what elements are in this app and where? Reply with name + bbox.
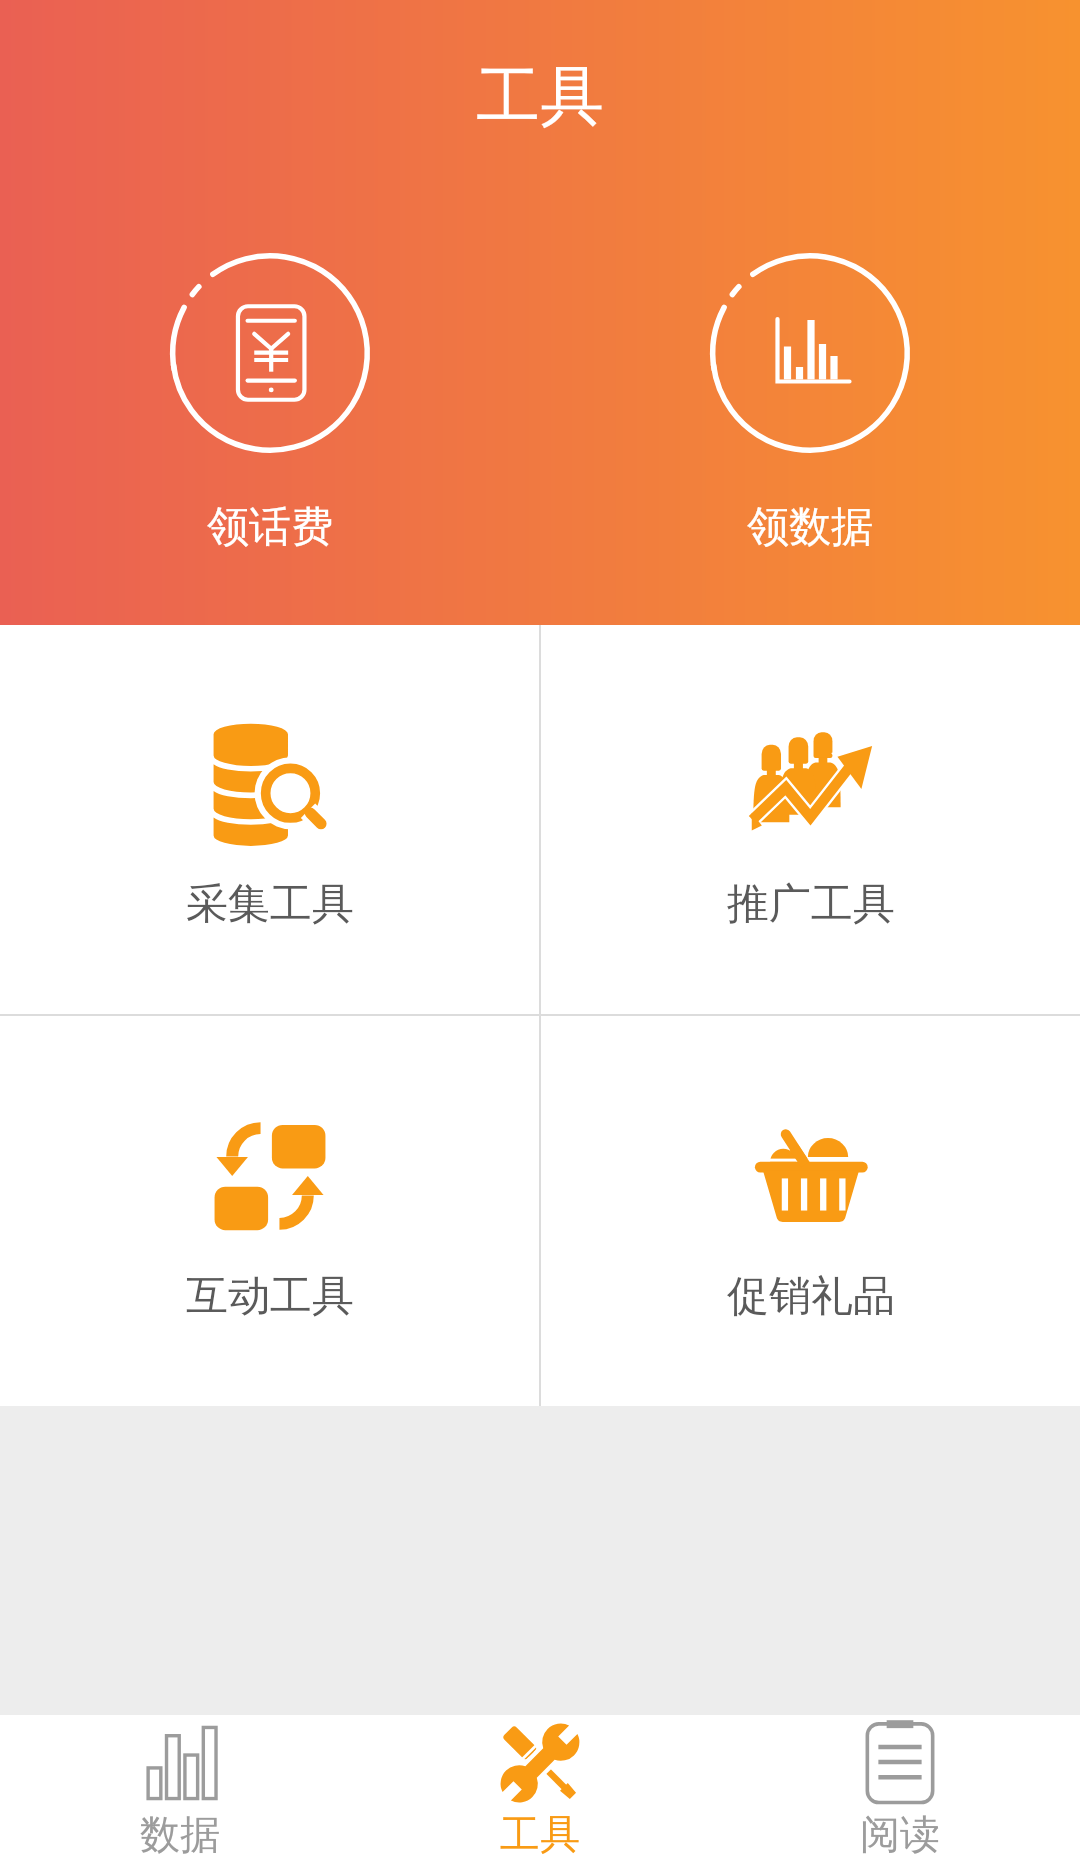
button[interactable]: 推广工具 [541, 625, 1080, 1014]
staticText: 阅读 [860, 1809, 940, 1859]
button[interactable]: 领数据 [710, 253, 910, 554]
other: 工具 [491, 1714, 589, 1812]
other: 数据 [134, 1717, 226, 1809]
button[interactable]: 领话费 [170, 253, 370, 554]
button[interactable]: 阅读 [720, 1715, 1080, 1864]
staticText: 工具 [476, 56, 604, 137]
button[interactable]: 工具 [360, 1715, 720, 1864]
staticText: 促销礼品 [727, 1270, 895, 1323]
staticText: 工具 [500, 1809, 580, 1859]
staticText: 采集工具 [186, 878, 354, 931]
button[interactable]: 促销礼品 [541, 1016, 1080, 1406]
button[interactable]: 采集工具 [0, 625, 539, 1014]
staticText: 领数据 [747, 501, 873, 554]
staticText: 领话费 [207, 501, 333, 554]
staticText: 互动工具 [186, 1270, 354, 1323]
staticText: 数据 [140, 1809, 220, 1859]
button[interactable]: 互动工具 [0, 1016, 539, 1406]
other: 阅读 [854, 1717, 946, 1809]
staticText: 推广工具 [727, 878, 895, 931]
button[interactable]: 数据 [0, 1715, 360, 1864]
